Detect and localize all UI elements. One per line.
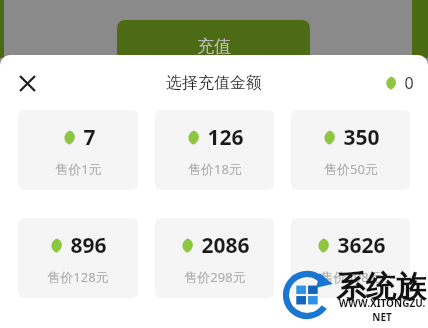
button[interactable]: 3626 — [291, 218, 410, 298]
button[interactable]: 0 — [384, 72, 414, 94]
button[interactable]: 350 — [291, 110, 410, 190]
button[interactable]: 126 — [155, 110, 274, 190]
staticText: 售价298元 — [184, 268, 246, 286]
staticText: 7 — [83, 123, 96, 152]
staticText: 售价498元 — [320, 268, 382, 286]
staticText: 350 — [343, 123, 380, 152]
staticText: 126 — [207, 123, 244, 152]
staticText: 售价18元 — [188, 160, 242, 178]
staticText: 2086 — [201, 231, 250, 260]
staticText: 896 — [70, 231, 107, 260]
button[interactable]: 7 — [18, 110, 138, 190]
staticText: 选择充值金额 — [166, 73, 262, 93]
staticText: 售价50元 — [324, 160, 378, 178]
staticText: WWW.XITONGZU.NET — [336, 296, 428, 324]
button[interactable]: 2086 — [155, 218, 274, 298]
staticText: 售价1元 — [55, 160, 102, 178]
staticText: 售价128元 — [47, 268, 109, 286]
staticText: 0 — [404, 72, 414, 94]
staticText: 3626 — [337, 231, 386, 260]
button[interactable]: 896 — [18, 218, 138, 298]
button[interactable]: Close — [8, 64, 46, 102]
staticText: 系统族 — [336, 268, 426, 306]
button[interactable]: 充值 — [117, 20, 310, 72]
staticText: 充值 — [197, 36, 231, 57]
